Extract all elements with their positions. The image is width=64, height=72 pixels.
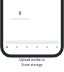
button[interactable]: Library xyxy=(24,45,30,49)
button[interactable]: Search xyxy=(14,45,20,49)
button[interactable]: Upload media to Score storage xyxy=(0,58,64,67)
button[interactable]: Profile xyxy=(54,45,60,49)
button[interactable]: Upload xyxy=(34,45,40,49)
staticText: Upload media to Score storage xyxy=(19,58,45,67)
button[interactable]: Home xyxy=(4,45,10,49)
button[interactable]: Activity xyxy=(44,45,50,49)
